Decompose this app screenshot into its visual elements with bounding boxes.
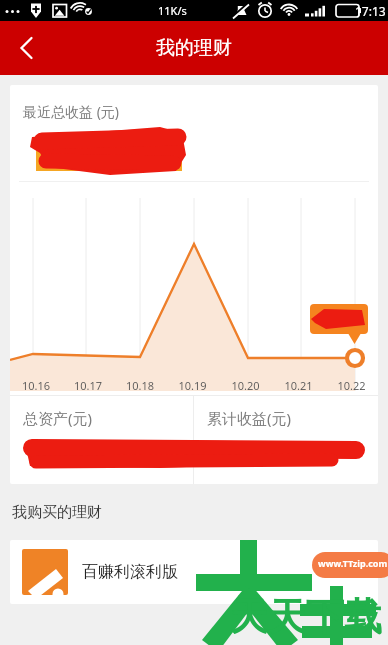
button[interactable]: Back [0,23,50,73]
button[interactable]: 百赚利滚利版 [10,540,378,604]
staticText: 10.16 [10,378,62,393]
staticText: 10.21 [272,378,325,393]
staticText: 我购买的理财 [12,503,102,522]
staticText: 11K/s [158,3,187,18]
staticText: 我的理财 [156,36,232,60]
staticText: 10.20 [219,378,272,393]
staticText: 10.22 [325,378,378,393]
staticText: 天天下载 [230,593,382,641]
staticText: 百赚利滚利版 [82,562,178,582]
staticText: 最近总收益 (元) [23,102,120,121]
staticText: 10.17 [62,378,114,393]
staticText: 10.18 [114,378,166,393]
staticText: www.TTzip.com [318,557,388,569]
staticText: 总资产(元) [23,408,93,428]
staticText: 10.19 [166,378,219,393]
staticText: 17:13 [355,3,386,19]
button[interactable]: 总资产(元) [10,396,193,484]
button[interactable]: 累计收益(元) [194,396,378,484]
staticText: 累计收益(元) [207,408,292,428]
